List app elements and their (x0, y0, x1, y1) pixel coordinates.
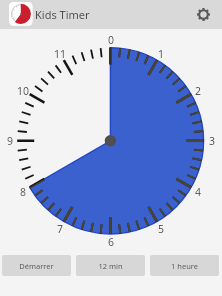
staticText: Démarrer (19, 261, 54, 271)
button[interactable]: 1 heure (150, 255, 219, 276)
button[interactable]: Démarrer (2, 255, 71, 276)
staticText: 4 (195, 185, 202, 199)
staticText: 9 (7, 134, 14, 148)
staticText: 0 (108, 33, 115, 47)
staticText: 6 (108, 235, 115, 249)
staticText: 2 (195, 84, 202, 98)
staticText: 7 (57, 222, 64, 236)
staticText: 1 (158, 47, 165, 61)
staticText: 1 heure (171, 261, 198, 271)
staticText: Kids Timer (35, 7, 90, 22)
staticText: 5 (158, 222, 165, 236)
button[interactable]: Settings (189, 0, 218, 29)
button[interactable]: 12 min (76, 255, 145, 276)
staticText: 3 (209, 134, 216, 148)
staticText: 8 (20, 185, 27, 199)
button[interactable]: Timer dial (0, 0, 222, 296)
staticText: 10 (17, 84, 30, 98)
staticText: 12 min (98, 261, 123, 271)
staticText: 11 (54, 47, 67, 61)
